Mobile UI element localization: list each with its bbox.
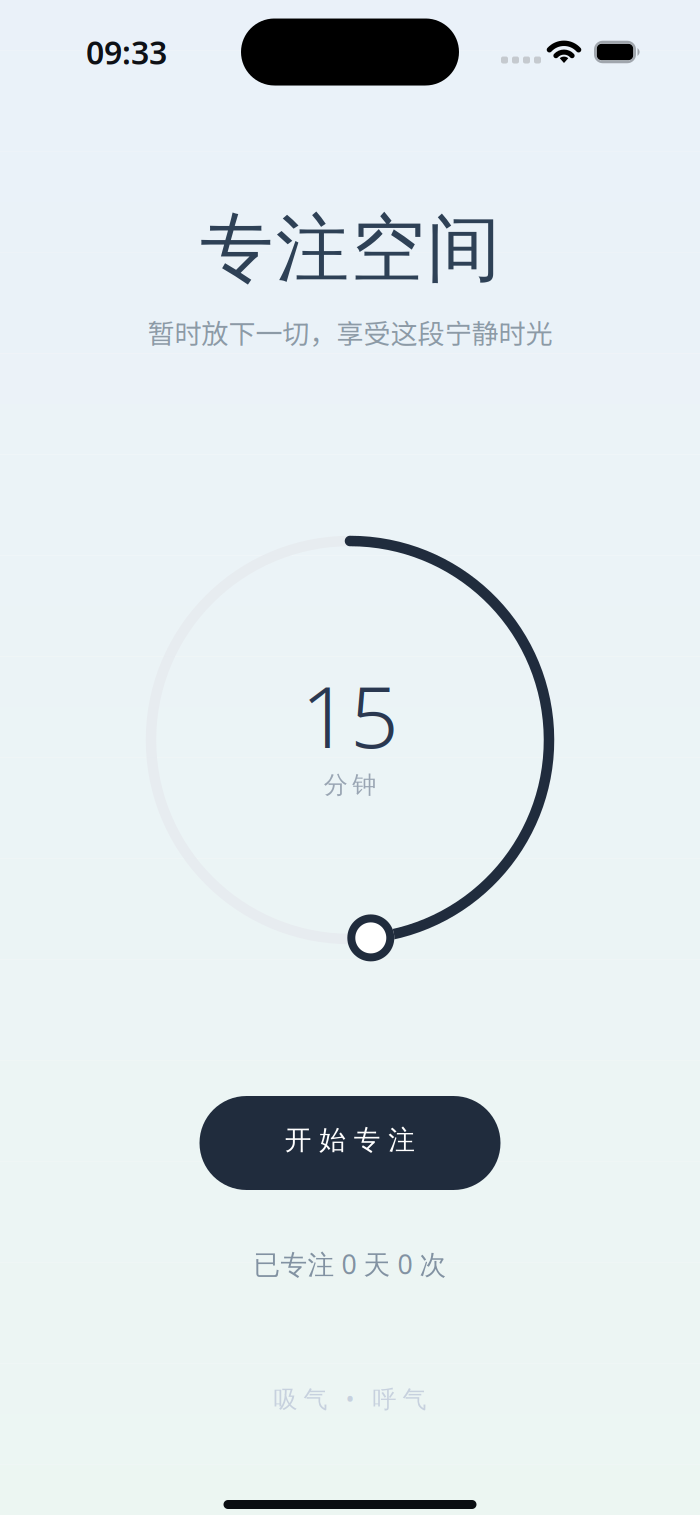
staticText: 开始专注	[285, 1124, 415, 1156]
staticText: 专注空间	[200, 204, 500, 294]
staticText: 暂时放下一切，享受这段宁静时光	[147, 312, 552, 352]
staticText: 吸气 • 呼气	[273, 1383, 426, 1414]
staticText: 09:33	[86, 31, 167, 73]
button[interactable]: 调整时长	[347, 914, 394, 961]
staticText: 已专注 0 天 0 次	[253, 1246, 446, 1282]
button[interactable]: 开始专注	[199, 1096, 500, 1190]
staticText: 15	[301, 658, 399, 772]
staticText: 分钟	[324, 770, 376, 800]
